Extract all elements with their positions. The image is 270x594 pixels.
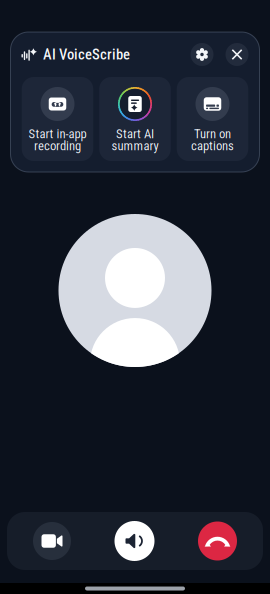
button[interactable]: Turn on — [177, 77, 248, 161]
button[interactable]: End call — [198, 521, 237, 560]
staticText: Start AI — [116, 127, 154, 141]
staticText: captions — [191, 139, 234, 153]
button[interactable]: Turn camera off — [33, 522, 71, 560]
button[interactable]: Start AI — [99, 77, 171, 161]
button[interactable]: Start in-app — [22, 77, 93, 161]
button[interactable]: Settings — [190, 43, 213, 66]
staticText: Start in-app — [28, 127, 86, 141]
staticText: Turn on — [194, 127, 231, 141]
button[interactable]: Speaker — [114, 521, 154, 561]
staticText: recording — [34, 139, 81, 153]
button[interactable]: Close — [225, 43, 248, 66]
staticText: AI VoiceScribe — [43, 46, 130, 63]
staticText: summary — [111, 139, 158, 153]
